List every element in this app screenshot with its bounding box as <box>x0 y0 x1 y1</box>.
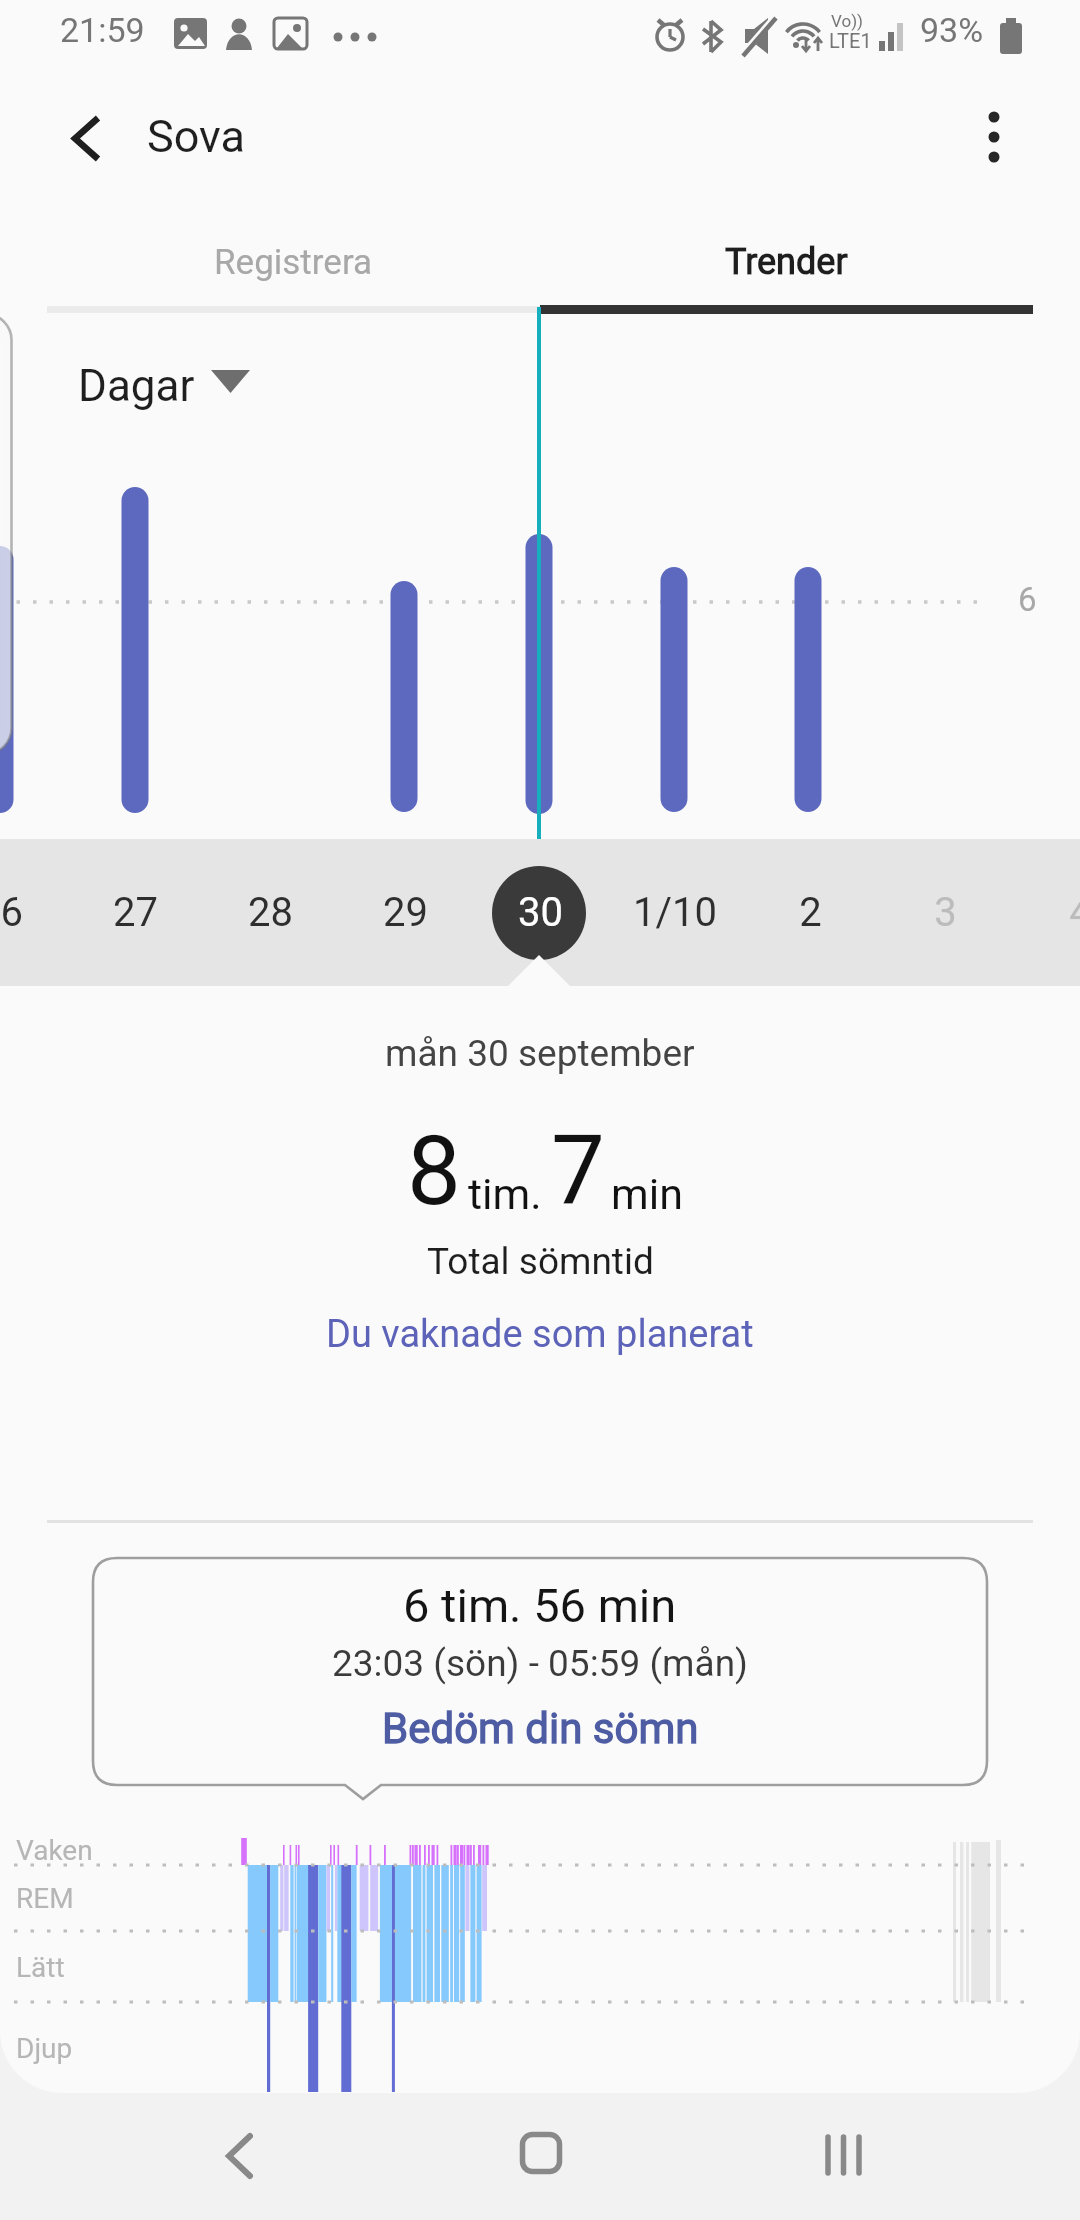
button[interactable]: Back <box>178 2112 298 2214</box>
staticText: 29 <box>383 889 428 936</box>
button[interactable]: Home <box>480 2112 600 2214</box>
staticText: Registrera <box>214 242 373 283</box>
staticText: Bedöm din sömn <box>382 1704 699 1753</box>
staticText: 6 <box>1018 580 1037 619</box>
staticText: tim. <box>468 1169 542 1219</box>
staticText: 6 tim. 56 min <box>403 1578 677 1633</box>
staticText: 93% <box>920 10 984 50</box>
staticText: 4 <box>1069 889 1080 936</box>
button[interactable]: Du vaknade som planerat <box>326 1312 754 1357</box>
staticText: Vo)) <box>831 11 863 31</box>
staticText: Total sömntid <box>427 1240 654 1283</box>
button[interactable]: 28 <box>203 839 337 986</box>
staticText: 28 <box>248 889 293 936</box>
staticText: 8 <box>407 1115 461 1228</box>
button[interactable]: 29 <box>338 839 472 986</box>
button[interactable]: 1/10 <box>608 839 742 986</box>
button[interactable]: 26 <box>0 839 67 986</box>
staticText: Trender <box>725 241 848 283</box>
staticText: 2 <box>799 889 822 936</box>
button[interactable]: 30 <box>473 839 607 986</box>
staticText: 30 <box>518 889 563 936</box>
staticText: 23:03 (sön) - 05:59 (mån) <box>332 1642 748 1685</box>
staticText: Djup <box>16 2032 73 2065</box>
staticText: 26 <box>0 889 23 936</box>
button[interactable]: 4 <box>1013 839 1080 986</box>
button[interactable]: 3 <box>878 839 1012 986</box>
staticText: 1/10 <box>633 889 717 936</box>
button[interactable]: Registrera <box>47 218 540 306</box>
button[interactable]: 27 <box>68 839 202 986</box>
staticText: 27 <box>113 889 158 936</box>
button[interactable]: More options <box>949 92 1039 182</box>
staticText: mån 30 september <box>385 1032 695 1075</box>
staticText: Lätt <box>16 1951 65 1984</box>
staticText: Sova <box>147 110 245 163</box>
staticText: Vaken <box>16 1834 93 1867</box>
staticText: 3 <box>934 889 957 936</box>
staticText: LTE1 <box>829 29 872 52</box>
staticText: REM <box>16 1882 74 1915</box>
staticText: min <box>611 1169 683 1219</box>
button[interactable]: Recent apps <box>783 2113 903 2215</box>
staticText: Dagar <box>78 360 195 412</box>
button[interactable]: Dagar <box>62 344 272 432</box>
button[interactable]: Trender <box>540 218 1033 306</box>
button[interactable]: 2 <box>743 839 877 986</box>
button[interactable]: Back <box>38 92 128 182</box>
staticText: 21:59 <box>60 10 145 50</box>
staticText: 7 <box>551 1115 605 1228</box>
staticText: Du vaknade som planerat <box>326 1312 754 1357</box>
button[interactable]: Bedöm din sömn <box>382 1704 699 1753</box>
